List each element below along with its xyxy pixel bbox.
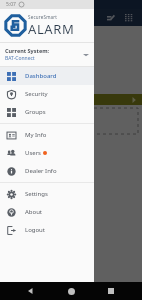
button[interactable]: Logout	[0, 221, 94, 239]
button[interactable]: Edit	[104, 11, 118, 25]
staticText: Security	[25, 90, 48, 98]
button[interactable]: Dealer Info	[0, 162, 94, 180]
staticText: My Info	[25, 131, 47, 139]
staticText: Groups	[25, 108, 46, 116]
button[interactable]: Home	[62, 282, 80, 300]
staticText: About	[25, 208, 43, 216]
button[interactable]: Groups	[0, 103, 94, 121]
staticText: Dashboard	[25, 72, 57, 80]
button[interactable]: Security	[0, 85, 94, 103]
staticText: Users	[25, 149, 41, 157]
staticText: Current System:	[5, 47, 50, 54]
button[interactable]: Recents	[102, 282, 120, 300]
button[interactable]	[4, 55, 30, 81]
staticText: Logout	[25, 226, 45, 234]
button[interactable]: About	[0, 203, 94, 221]
staticText: Settings	[25, 190, 48, 198]
button[interactable]: My Info	[0, 126, 94, 144]
button[interactable]: Settings	[0, 185, 94, 203]
staticText: ALARM	[28, 20, 75, 38]
button[interactable]: Users	[0, 144, 94, 162]
staticText: 5:07	[6, 1, 16, 8]
button[interactable]: Back	[22, 282, 40, 300]
staticText: SecureSmart	[28, 14, 58, 20]
button[interactable]: Dashboard	[0, 67, 94, 85]
staticText: BAT-Connect	[5, 55, 35, 62]
staticText: Away	[11, 83, 24, 90]
button[interactable]: Current System:	[0, 43, 94, 66]
staticText: Dealer Info	[25, 167, 57, 175]
button[interactable]: Keypad	[122, 11, 136, 25]
